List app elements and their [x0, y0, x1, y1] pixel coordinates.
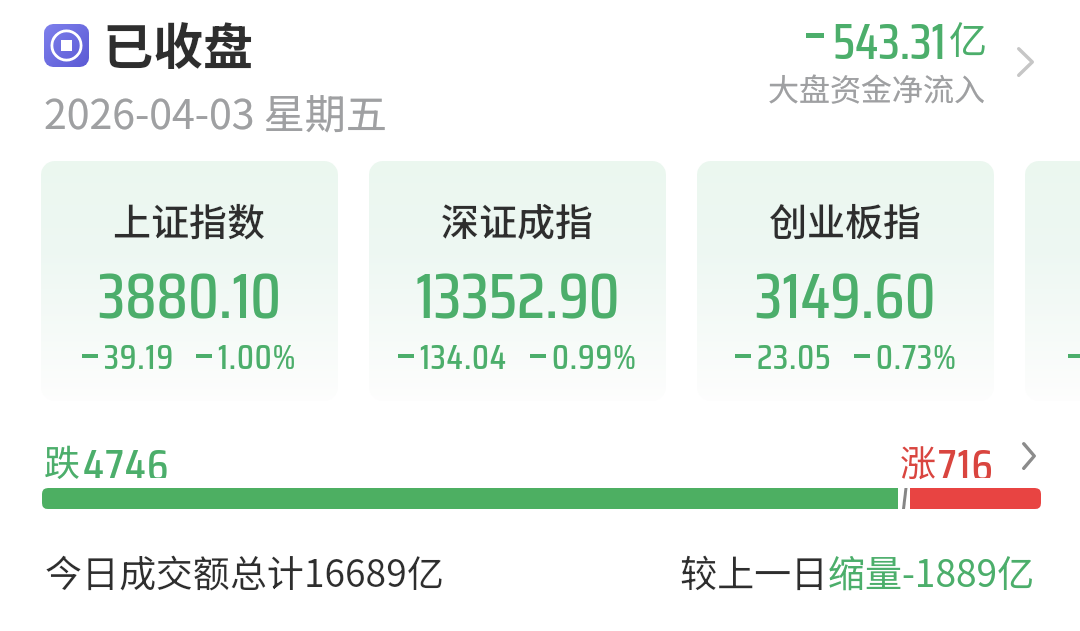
button[interactable]: 涨: [900, 430, 1010, 478]
staticText: 3880.10: [98, 245, 282, 346]
staticText: 涨: [900, 434, 937, 482]
staticText: 1.00%: [218, 329, 297, 384]
staticText: 已收盘: [103, 7, 253, 77]
button[interactable]: 跌: [44, 430, 184, 478]
button[interactable]: 上证指数: [41, 161, 338, 401]
staticText: 39.19: [104, 329, 174, 384]
staticText: 23.05: [757, 329, 832, 384]
staticText: 4746: [83, 430, 170, 478]
staticText: 3149.60: [755, 245, 936, 346]
staticText: 深证成指: [441, 192, 594, 247]
staticText: 今日成交额总计16689亿: [45, 544, 444, 598]
staticText: 跌: [44, 434, 81, 482]
button[interactable]: 今日成交额总计16689亿: [45, 544, 444, 598]
staticText: 716: [938, 430, 995, 478]
staticText: 较上一日缩量-1889亿: [634, 544, 1034, 598]
button[interactable]: Fund flow details: [1007, 32, 1043, 92]
button[interactable]: 科创50指: [1025, 161, 1080, 401]
button[interactable]: 深证成指: [369, 161, 666, 401]
staticText: 0.99%: [552, 329, 638, 384]
staticText: 2026-04-03 星期五: [44, 81, 387, 140]
button[interactable]: 较上一日缩量-1889亿: [634, 544, 1034, 598]
staticText: 0.73%: [876, 329, 957, 384]
staticText: 创业板指: [769, 192, 922, 247]
other: Market closed: [44, 24, 89, 67]
staticText: 13352.90: [416, 245, 620, 346]
button[interactable]: Advancers and decliners: [1011, 430, 1047, 482]
staticText: 亿: [949, 10, 988, 65]
button[interactable]: Market closed: [44, 10, 259, 80]
staticText: 134.04: [420, 329, 508, 384]
button[interactable]: 543.31: [700, 6, 985, 106]
staticText: 上证指数: [113, 192, 266, 247]
staticText: 543.31: [833, 2, 946, 81]
staticText: 大盘资金净流入: [768, 65, 985, 110]
button[interactable]: 创业板指: [697, 161, 994, 401]
